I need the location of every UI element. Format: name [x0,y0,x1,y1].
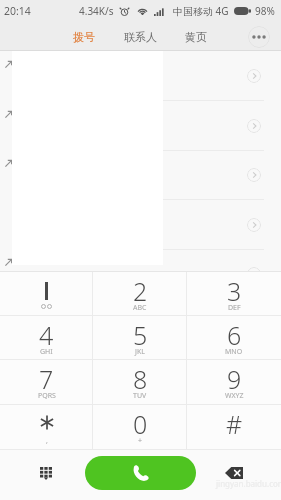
button[interactable]: 6 [187,316,281,360]
staticText: # [226,407,243,441]
staticText: 拨号 [73,30,95,44]
button[interactable]: 2 [93,272,187,316]
button[interactable]: 8 [93,360,187,405]
button[interactable]: Call details [247,69,261,83]
staticText: 3 [227,274,242,308]
button[interactable]: More options [248,26,270,48]
staticText: JKL [135,347,145,357]
staticText: TUV [133,391,147,401]
button[interactable]: # [187,405,281,450]
staticText: 5 [133,318,148,352]
staticText: ABC [133,303,147,313]
staticText: MNO [225,347,243,357]
button[interactable]: Call details [247,267,261,281]
staticText: + [138,436,143,446]
button[interactable]: 3 [187,272,281,316]
staticText: jingyan.baidu.com [216,478,281,489]
button[interactable]: Call details [247,119,261,133]
staticText: 2 [133,274,148,308]
staticText: 20:14 [4,4,31,18]
button[interactable]: 联系人 [118,25,163,49]
button[interactable]: 9 [187,360,281,405]
button[interactable]: Hide keypad [28,449,64,499]
staticText: 7 [39,362,54,396]
staticText: GHI [40,347,53,357]
button[interactable]: Call details [0,200,281,250]
staticText: 联系人 [124,30,157,44]
button[interactable]: Call details [0,249,281,299]
staticText: 9 [227,362,242,396]
button[interactable]: Call details [0,101,281,151]
button[interactable] [0,272,93,316]
staticText: 98% [255,4,275,18]
staticText: DEF [228,303,241,313]
staticText: 0 [133,407,148,441]
button[interactable]: Call details [0,150,281,200]
staticText: 6 [227,318,242,352]
button[interactable]: Call details [0,51,281,101]
button[interactable]: Call details [247,218,261,232]
staticText: 黄页 [185,30,207,44]
button[interactable]: Call details [247,168,261,182]
button[interactable]: 7 [0,360,93,405]
staticText: WXYZ [225,391,244,401]
button[interactable]: Call [85,456,196,490]
button[interactable]: 黄页 [179,25,213,49]
button[interactable]: 拨号 [67,25,101,49]
staticText: 中国移动 4G [173,4,229,18]
button[interactable]: , [0,405,93,450]
button[interactable]: 5 [93,316,187,360]
button[interactable]: Backspace [216,448,252,498]
staticText: 8 [133,362,148,396]
staticText: 4 [39,318,54,352]
button[interactable]: 4 [0,316,93,360]
staticText: 4.34K/s [79,4,114,18]
staticText: PQRS [38,391,56,401]
staticText: , [46,436,48,446]
button[interactable]: 0 [93,405,187,450]
